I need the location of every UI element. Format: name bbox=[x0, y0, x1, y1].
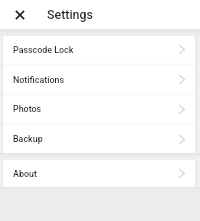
button[interactable]: Backup bbox=[3, 125, 195, 153]
button[interactable]: Photos bbox=[3, 96, 195, 122]
staticText: Notifications bbox=[13, 75, 65, 85]
staticText: Backup bbox=[13, 134, 43, 144]
staticText: About bbox=[13, 169, 37, 179]
staticText: Settings bbox=[47, 7, 93, 22]
staticText: Passcode Lock bbox=[13, 45, 74, 55]
button[interactable]: Notifications bbox=[3, 66, 195, 93]
button[interactable]: Close bbox=[0, 0, 39, 29]
staticText: Photos bbox=[13, 104, 42, 114]
button[interactable]: Passcode Lock bbox=[3, 36, 195, 63]
button[interactable]: About bbox=[3, 160, 195, 187]
